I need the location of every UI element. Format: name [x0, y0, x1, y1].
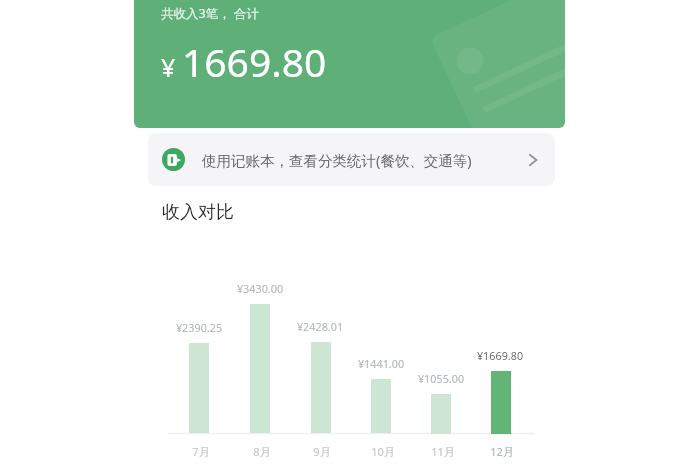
staticText: 9月 — [288, 444, 356, 459]
staticText: ¥1055.00 — [407, 371, 475, 386]
staticText: ¥3430.00 — [226, 281, 294, 296]
staticText: ¥2428.01 — [286, 319, 354, 334]
staticText: 7月 — [167, 444, 235, 459]
staticText: ¥ — [161, 50, 176, 84]
staticText: 1669.80 — [182, 35, 327, 88]
button[interactable]: 使用记账本，查看分类统计(餐饮、交通等) — [148, 133, 555, 186]
staticText: 8月 — [228, 444, 296, 459]
staticText: 10月 — [349, 444, 417, 459]
staticText: 11月 — [409, 444, 477, 459]
staticText: ¥2390.25 — [165, 320, 233, 335]
staticText: 12月 — [468, 444, 536, 459]
staticText: 共收入3笔， 合计 — [161, 5, 259, 22]
staticText: 收入对比 — [162, 201, 234, 224]
staticText: ¥1441.00 — [347, 356, 415, 371]
other: 查看分类统计 — [525, 152, 541, 168]
staticText: ¥1669.80 — [466, 348, 534, 363]
staticText: 使用记账本，查看分类统计(餐饮、交通等) — [202, 150, 472, 170]
